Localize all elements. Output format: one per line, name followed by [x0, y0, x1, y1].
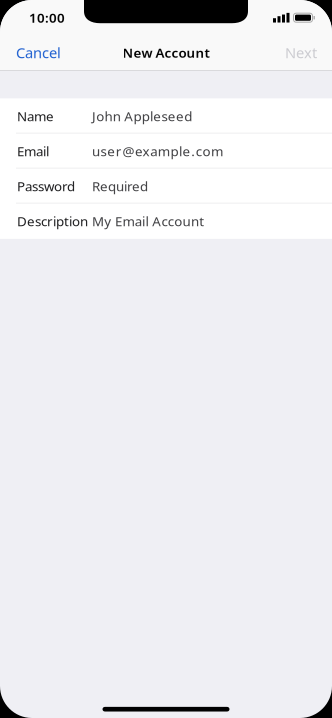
button[interactable]: Cancel [0, 32, 71, 70]
staticText: John Appleseed [92, 107, 192, 125]
button[interactable]: Description [0, 204, 332, 239]
staticText: Password [17, 177, 75, 195]
button[interactable]: Password [0, 169, 332, 204]
staticText: Name [17, 107, 54, 125]
staticText: Description [17, 212, 88, 230]
staticText: Required [92, 177, 148, 195]
staticText: Next [285, 43, 317, 62]
staticText: My Email Account [92, 212, 204, 230]
button[interactable]: Email [0, 134, 332, 169]
button[interactable]: Name [0, 99, 332, 134]
button[interactable]: Next [275, 32, 332, 70]
staticText: New Account [122, 44, 209, 61]
staticText: Email [17, 142, 49, 160]
staticText: 10:00 [29, 9, 65, 26]
staticText: user@example.com [92, 142, 223, 160]
staticText: Cancel [16, 43, 61, 62]
